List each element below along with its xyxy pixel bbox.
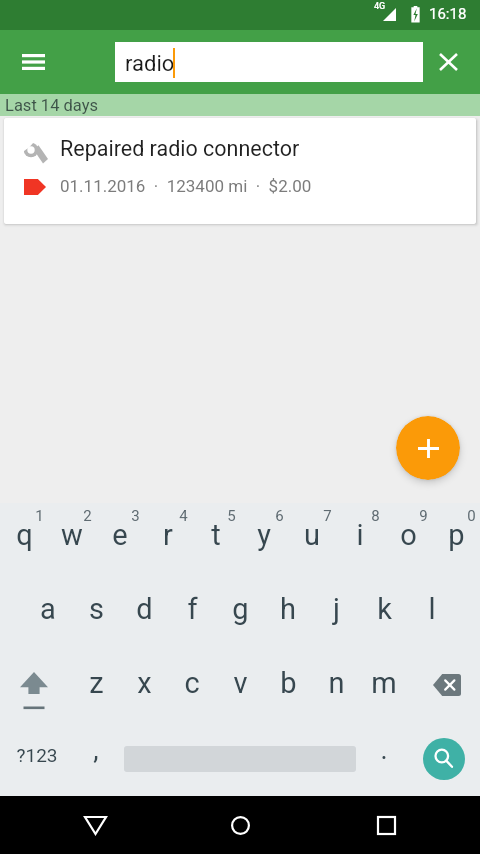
staticText: t: [211, 518, 221, 552]
staticText: o: [400, 518, 417, 552]
button[interactable]: k: [360, 574, 408, 644]
button[interactable]: f: [168, 574, 216, 644]
button[interactable]: 7: [315, 506, 339, 526]
button[interactable]: Clear search: [425, 39, 471, 85]
button[interactable]: w: [48, 500, 96, 570]
staticText: 4: [179, 507, 188, 525]
button[interactable]: 0: [459, 506, 480, 526]
button[interactable]: 9: [411, 506, 435, 526]
staticText: i: [356, 518, 364, 552]
button[interactable]: n: [312, 648, 360, 718]
button[interactable]: h: [264, 574, 312, 644]
staticText: 0: [467, 507, 476, 525]
staticText: 5: [227, 507, 236, 525]
button[interactable]: Shift: [0, 650, 68, 720]
button[interactable]: ,: [74, 717, 118, 783]
staticText: r: [163, 518, 173, 552]
button[interactable]: 3: [123, 506, 147, 526]
button[interactable]: x: [120, 648, 168, 718]
button[interactable]: 4: [171, 506, 195, 526]
staticText: d: [136, 592, 153, 626]
staticText: a: [40, 592, 56, 626]
button[interactable]: Add: [396, 416, 460, 480]
button[interactable]: i: [336, 500, 384, 570]
button[interactable]: 8: [363, 506, 387, 526]
staticText: Last 14 days: [5, 96, 98, 115]
button[interactable]: Back: [69, 799, 121, 851]
staticText: 16:18: [429, 5, 467, 23]
staticText: 8: [371, 507, 380, 525]
button[interactable]: p: [432, 500, 480, 570]
staticText: l: [428, 592, 436, 626]
button[interactable]: 1: [27, 506, 51, 526]
button[interactable]: e: [96, 500, 144, 570]
staticText: 9: [419, 507, 428, 525]
button[interactable]: d: [120, 574, 168, 644]
button[interactable]: y: [240, 500, 288, 570]
button[interactable]: ?123: [2, 722, 72, 788]
staticText: z: [89, 666, 104, 700]
button[interactable]: a: [24, 574, 72, 644]
staticText: 7: [323, 507, 332, 525]
staticText: u: [304, 518, 320, 552]
button[interactable]: 6: [267, 506, 291, 526]
staticText: y: [257, 518, 271, 552]
button[interactable]: Menu: [10, 39, 56, 85]
button[interactable]: c: [168, 648, 216, 718]
button[interactable]: q: [0, 500, 48, 570]
staticText: radio: [125, 51, 175, 77]
staticText: c: [184, 666, 200, 700]
staticText: h: [280, 592, 296, 626]
button[interactable]: Search: [423, 738, 465, 780]
staticText: f: [187, 592, 198, 626]
button[interactable]: u: [288, 500, 336, 570]
staticText: w: [61, 518, 83, 552]
staticText: Repaired radio connector: [60, 136, 300, 161]
button[interactable]: g: [216, 574, 264, 644]
staticText: e: [112, 518, 128, 552]
button[interactable]: Backspace: [412, 650, 480, 720]
staticText: b: [280, 666, 297, 700]
button[interactable]: z: [72, 648, 120, 718]
button[interactable]: radio: [115, 42, 423, 82]
staticText: k: [377, 592, 392, 626]
staticText: 01.11.2016 · 123400 mi · $2.00: [60, 176, 312, 196]
staticText: ,: [93, 734, 99, 766]
staticText: 1: [35, 507, 44, 525]
staticText: q: [16, 518, 33, 552]
button[interactable]: l: [408, 574, 456, 644]
button[interactable]: v: [216, 648, 264, 718]
staticText: v: [233, 666, 248, 700]
button[interactable]: t: [192, 500, 240, 570]
button[interactable]: m: [360, 648, 408, 718]
button[interactable]: Repaired radio connector: [4, 118, 476, 224]
button[interactable]: s: [72, 574, 120, 644]
staticText: 2: [83, 507, 92, 525]
staticText: n: [328, 666, 345, 700]
button[interactable]: Recents: [360, 799, 412, 851]
staticText: g: [232, 592, 249, 626]
staticText: 4G: [374, 1, 386, 12]
staticText: 3: [131, 507, 140, 525]
staticText: ?123: [16, 744, 58, 766]
staticText: j: [333, 592, 340, 626]
staticText: m: [371, 666, 397, 700]
button[interactable]: j: [312, 574, 360, 644]
button[interactable]: 2: [75, 506, 99, 526]
staticText: 6: [275, 507, 284, 525]
button[interactable]: Home: [214, 799, 266, 851]
staticText: .: [380, 734, 388, 766]
button[interactable]: 5: [219, 506, 243, 526]
staticText: p: [448, 518, 465, 552]
button[interactable]: r: [144, 500, 192, 570]
staticText: x: [137, 666, 152, 700]
button[interactable]: b: [264, 648, 312, 718]
button[interactable]: .: [362, 717, 406, 783]
button[interactable]: o: [384, 500, 432, 570]
staticText: s: [89, 592, 104, 626]
